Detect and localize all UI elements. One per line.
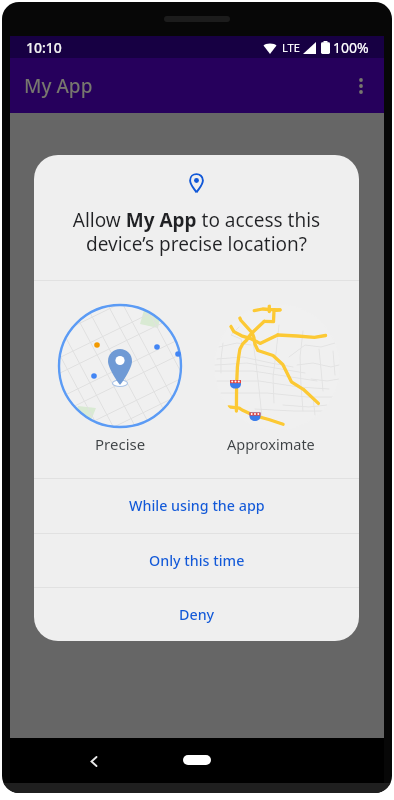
button[interactable]: Precise location xyxy=(54,300,186,432)
staticText: Approximate xyxy=(227,434,315,454)
staticText: While using the app xyxy=(129,496,265,515)
button[interactable]: Back xyxy=(78,743,112,777)
staticText: Deny xyxy=(179,605,215,624)
button[interactable]: Home xyxy=(183,755,211,765)
button[interactable]: Deny xyxy=(34,587,359,641)
button[interactable]: More options xyxy=(343,68,379,104)
staticText: My App xyxy=(24,73,93,99)
staticText: LTE xyxy=(282,40,300,55)
staticText: Precise xyxy=(95,434,146,454)
staticText: Allow My App to access this device’s pre… xyxy=(52,207,341,256)
button[interactable]: While using the app xyxy=(34,478,359,533)
staticText: 100% xyxy=(333,38,369,57)
staticText: Only this time xyxy=(149,551,245,570)
button[interactable]: Approximate location xyxy=(211,301,343,433)
staticText: 10:10 xyxy=(26,38,62,57)
button[interactable]: Only this time xyxy=(34,533,359,587)
